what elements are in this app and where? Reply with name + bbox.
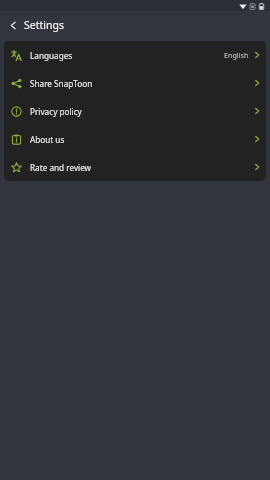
staticText: English — [224, 50, 249, 60]
staticText: Languages — [30, 50, 73, 61]
button[interactable]: Languages — [4, 41, 266, 69]
button[interactable]: About us — [4, 125, 266, 153]
staticText: Share SnapToon — [30, 78, 93, 89]
button[interactable]: Back — [4, 16, 22, 34]
staticText: Privacy policy — [30, 106, 82, 117]
button[interactable]: Privacy policy — [4, 97, 266, 125]
button[interactable]: Share SnapToon — [4, 69, 266, 97]
button[interactable]: Rate and review — [4, 153, 266, 181]
staticText: Rate and review — [30, 162, 92, 173]
staticText: About us — [30, 134, 65, 145]
staticText: Settings — [24, 18, 64, 32]
